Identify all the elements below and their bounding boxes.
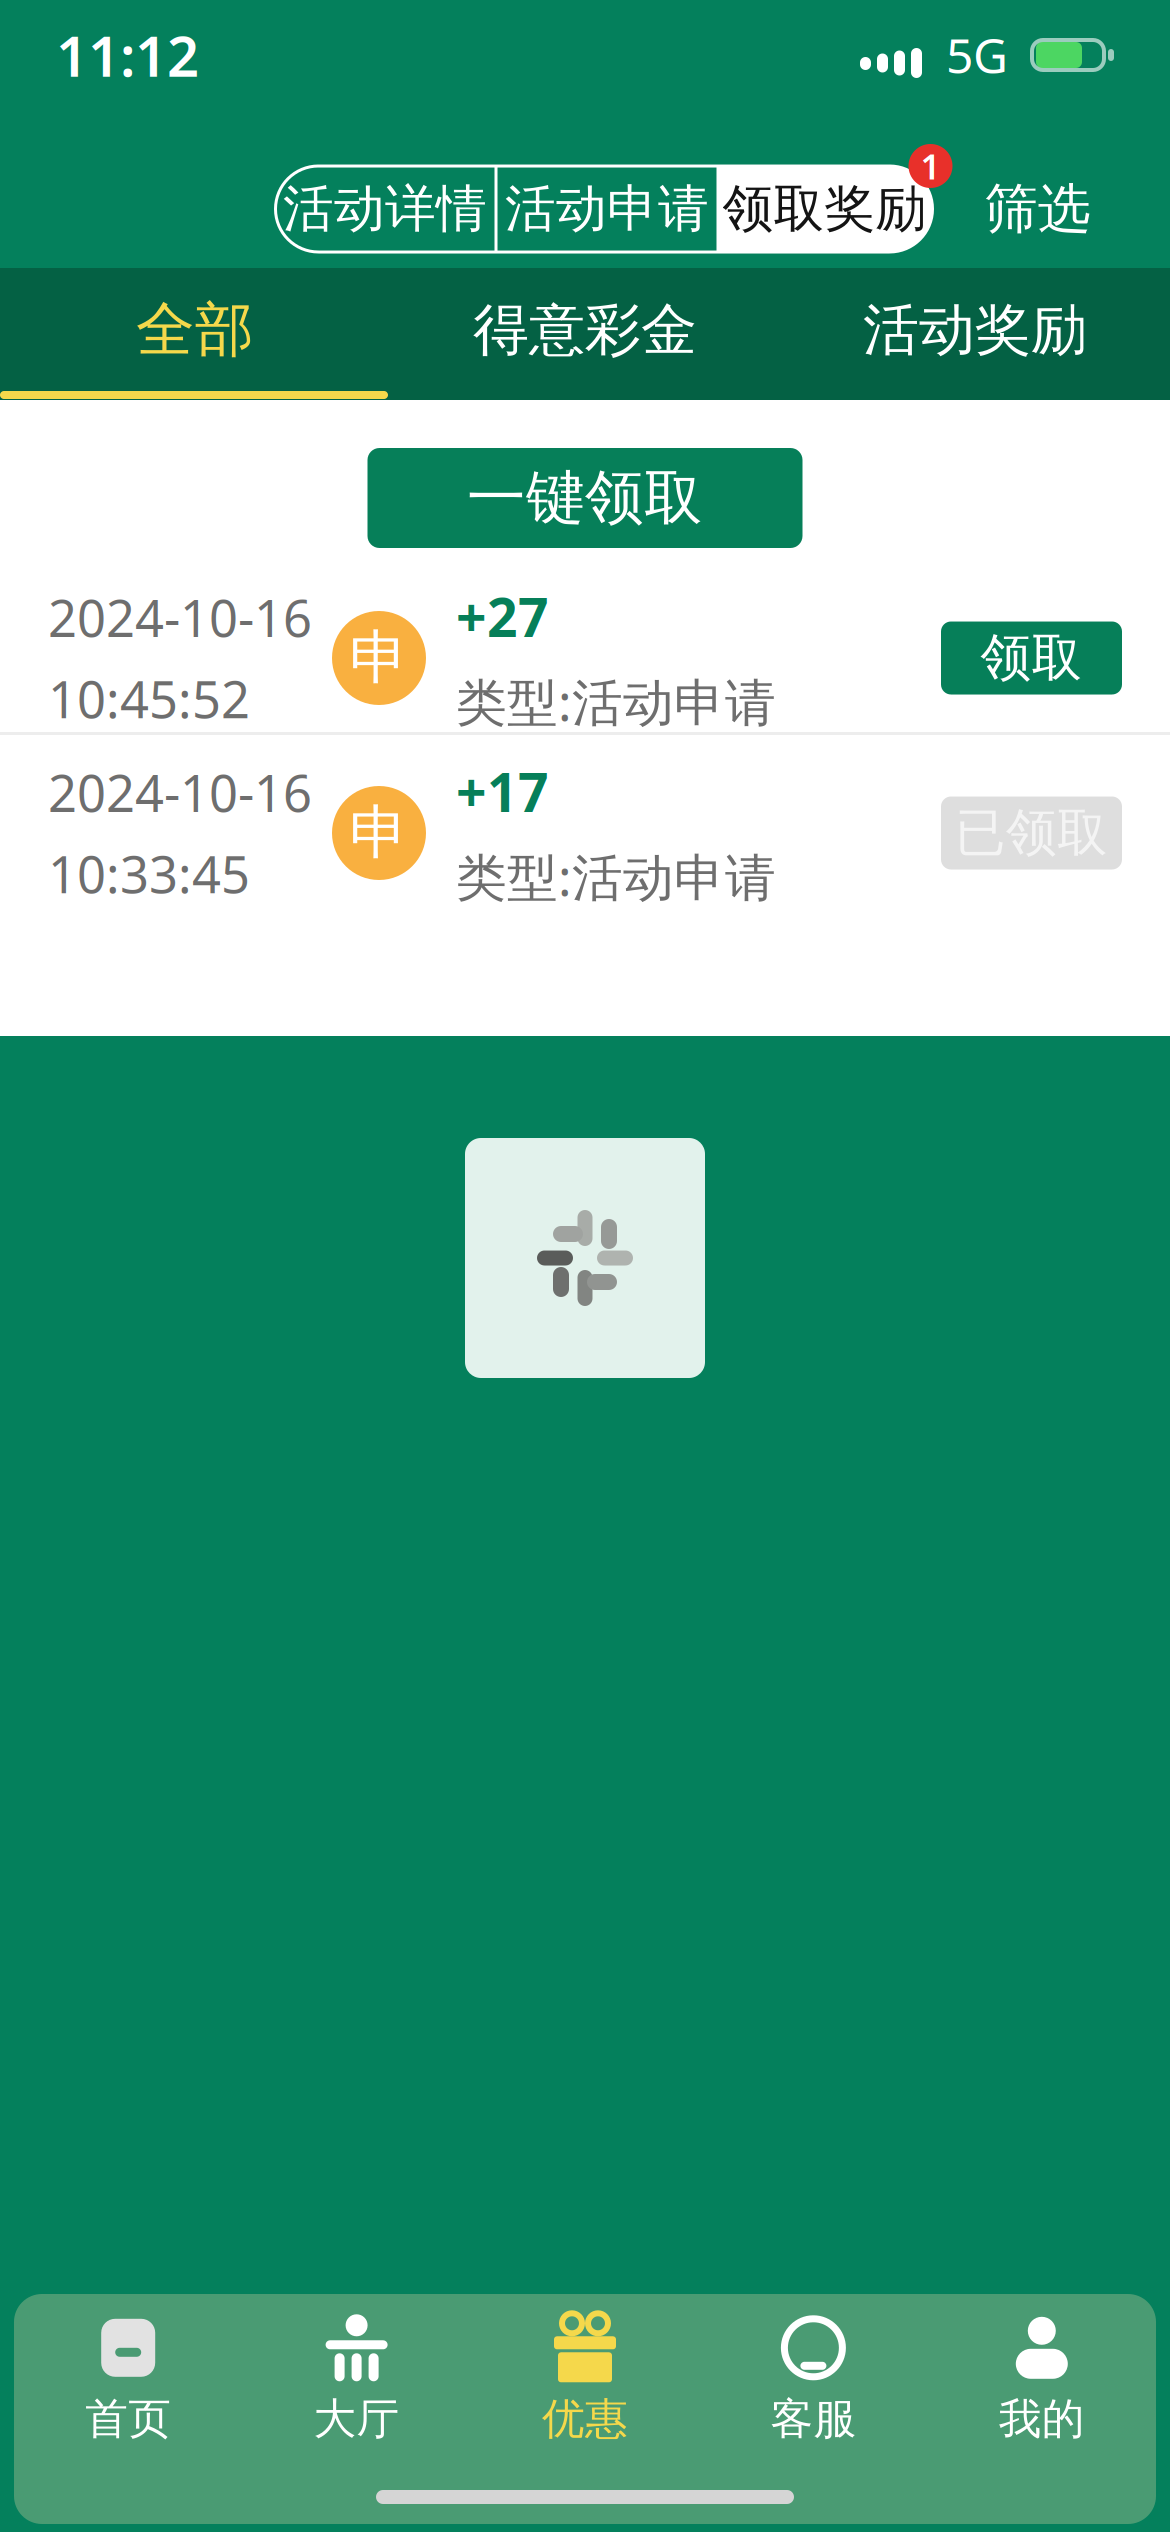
- staticText: 全部: [136, 294, 254, 366]
- staticText: 10:33:45: [48, 840, 250, 907]
- button[interactable]: 筛选: [952, 144, 1122, 252]
- button[interactable]: 已领取: [941, 796, 1122, 869]
- staticText: 申: [349, 797, 408, 869]
- button[interactable]: 领取: [941, 621, 1122, 694]
- staticText: 1: [920, 143, 940, 189]
- button[interactable]: 大厅: [242, 2316, 471, 2446]
- staticText: 活动详情: [283, 178, 487, 240]
- staticText: +27: [456, 581, 549, 652]
- staticText: 优惠: [542, 2393, 628, 2445]
- button[interactable]: 活动奖励: [780, 269, 1170, 391]
- staticText: 10:45:52: [48, 665, 250, 732]
- button[interactable]: 客服: [699, 2316, 928, 2446]
- button[interactable]: 全部: [0, 269, 390, 391]
- staticText: 大厅: [314, 2393, 400, 2445]
- staticText: 筛选: [984, 176, 1090, 242]
- staticText: +17: [456, 756, 549, 827]
- button[interactable]: 优惠: [471, 2316, 699, 2446]
- staticText: 申: [349, 622, 408, 694]
- staticText: 11:12: [56, 18, 199, 92]
- button[interactable]: 一键领取: [367, 448, 802, 548]
- button[interactable]: 得意彩金: [390, 269, 780, 391]
- staticText: 已领取: [955, 802, 1108, 864]
- staticText: 活动奖励: [863, 296, 1087, 364]
- staticText: 类型:活动申请: [456, 843, 776, 910]
- button[interactable]: 首页: [14, 2316, 242, 2446]
- button[interactable]: 活动申请: [497, 166, 716, 252]
- staticText: 得意彩金: [473, 296, 697, 364]
- staticText: 我的: [999, 2393, 1085, 2445]
- staticText: 首页: [85, 2393, 171, 2445]
- staticText: 2024-10-16: [48, 584, 312, 651]
- staticText: 5G: [946, 23, 1008, 87]
- staticText: 类型:活动申请: [456, 668, 776, 735]
- button[interactable]: 领取奖励: [716, 166, 932, 252]
- button[interactable]: 我的: [928, 2316, 1156, 2446]
- staticText: 活动申请: [505, 178, 709, 240]
- staticText: 客服: [770, 2393, 856, 2445]
- staticText: 领取奖励: [722, 178, 926, 240]
- staticText: 一键领取: [467, 462, 703, 534]
- button[interactable]: 活动详情: [275, 166, 494, 252]
- staticText: 2024-10-16: [48, 759, 312, 826]
- staticText: 领取: [980, 627, 1082, 689]
